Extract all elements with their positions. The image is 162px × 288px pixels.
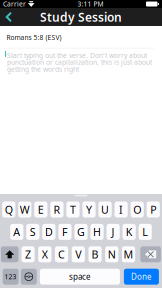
button[interactable]: T — [66, 201, 80, 217]
button[interactable]: Q — [2, 201, 15, 217]
staticText: Romans 5:8 (ESV) — [6, 33, 61, 42]
staticText: B — [91, 247, 98, 261]
staticText: E — [38, 202, 44, 217]
staticText: O — [133, 202, 141, 217]
button[interactable]: Back — [0, 8, 17, 26]
staticText: Y — [86, 202, 92, 217]
button[interactable]: 123 — [3, 269, 19, 285]
staticText: I — [119, 202, 123, 217]
staticText: Carrier — [3, 0, 26, 8]
staticText: T — [70, 202, 76, 217]
button[interactable]: B — [88, 246, 102, 262]
button[interactable]: Done — [124, 269, 159, 285]
button[interactable]: L — [139, 224, 152, 240]
staticText: U — [101, 202, 109, 217]
staticText: Study Session — [40, 9, 122, 25]
button[interactable]: V — [72, 246, 85, 262]
staticText: X — [42, 247, 48, 261]
button[interactable]: Z — [21, 246, 35, 262]
staticText: M — [123, 247, 133, 261]
staticText: Start typing out the verse. Don't worry … — [7, 51, 152, 74]
button[interactable]: G — [74, 224, 88, 240]
button[interactable]: Y — [82, 201, 96, 217]
button[interactable]: space — [40, 269, 120, 285]
staticText: C — [58, 247, 65, 261]
staticText: S — [30, 225, 36, 239]
button[interactable]: I — [114, 201, 128, 217]
staticText: Done — [131, 271, 152, 282]
staticText: W — [20, 202, 30, 217]
staticText: Q — [5, 202, 13, 217]
staticText: R — [53, 202, 60, 217]
staticText: J — [112, 225, 115, 239]
staticText: V — [75, 247, 81, 261]
button[interactable]: S — [26, 224, 39, 240]
button[interactable]: U — [98, 201, 112, 217]
button[interactable]: F — [58, 224, 72, 240]
button[interactable]: D — [42, 224, 55, 240]
button[interactable]: Shift — [1, 246, 18, 262]
staticText: H — [93, 225, 101, 239]
button[interactable]: X — [38, 246, 51, 262]
button[interactable]: Delete — [140, 246, 161, 262]
button[interactable]: O — [131, 201, 144, 217]
button[interactable]: A — [10, 224, 23, 240]
staticText: F — [62, 225, 68, 239]
staticText: G — [77, 225, 85, 239]
button[interactable]: P — [147, 201, 160, 217]
staticText: 3:11 PM — [77, 0, 103, 8]
staticText: P — [150, 202, 156, 217]
staticText: D — [45, 225, 53, 239]
staticText: space — [69, 271, 91, 282]
button[interactable]: E — [34, 201, 47, 217]
button[interactable]: N — [105, 246, 118, 262]
staticText: N — [108, 247, 116, 261]
staticText: L — [142, 225, 148, 239]
button[interactable]: K — [123, 224, 136, 240]
staticText: 123 — [5, 272, 17, 281]
button[interactable]: Next keyboard — [21, 269, 37, 285]
staticText: K — [126, 225, 133, 239]
button[interactable]: J — [106, 224, 120, 240]
button[interactable]: W — [18, 201, 31, 217]
staticText: A — [13, 225, 20, 239]
button[interactable]: R — [50, 201, 63, 217]
button[interactable]: M — [122, 246, 135, 262]
button[interactable]: C — [55, 246, 68, 262]
staticText: Z — [25, 247, 31, 261]
button[interactable]: H — [90, 224, 104, 240]
